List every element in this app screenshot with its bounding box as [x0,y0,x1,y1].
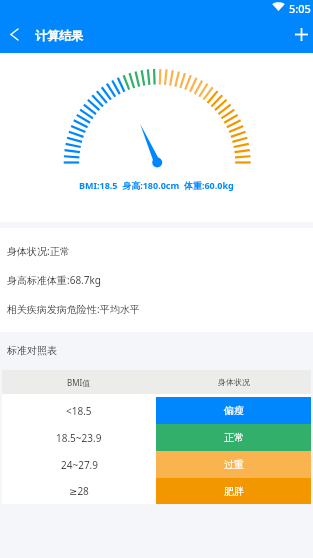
staticText: 身体状况:正常 [7,244,70,258]
staticText: 24~27.9 [61,458,98,472]
staticText: 计算结果 [35,28,83,43]
staticText: 相关疾病发病危险性:平均水平 [7,302,140,316]
button[interactable]: 24~27.9 [2,451,311,478]
staticText: 肥胖 [224,485,244,498]
button[interactable]: Back [0,20,28,48]
button[interactable]: Add [289,20,313,48]
staticText: 过重 [224,458,244,471]
staticText: <18.5 [66,404,92,418]
staticText: 身体状况 [218,377,250,387]
button[interactable]: 18.5~23.9 [2,424,311,451]
staticText: 正常 [224,431,244,444]
button[interactable]: <18.5 [2,397,311,424]
button[interactable]: ≥28 [2,478,311,504]
staticText: 5:05 [289,1,311,16]
staticText: ≥28 [69,484,89,498]
staticText: 18.5~23.9 [56,431,102,445]
staticText: 身高标准体重:68.7kg [7,273,102,287]
staticText: BMI:18.5 身高:180.0cm 体重:60.0kg [79,179,234,191]
staticText: 标准对照表 [7,344,57,357]
staticText: 偏瘦 [224,404,244,417]
staticText: BMI值 [67,377,91,388]
